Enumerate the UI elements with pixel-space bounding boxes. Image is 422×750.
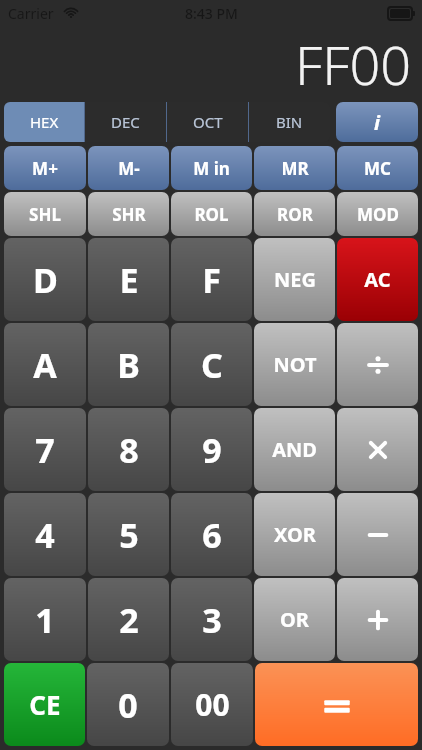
- staticText: DEC: [111, 112, 140, 132]
- staticText: i: [374, 109, 380, 136]
- staticText: SHL: [29, 203, 61, 226]
- button[interactable]: ROR: [254, 192, 335, 236]
- button[interactable]: C: [171, 323, 252, 406]
- button[interactable]: AND: [254, 408, 335, 491]
- staticText: D: [33, 257, 58, 303]
- staticText: MR: [281, 157, 309, 180]
- button[interactable]: SHR: [88, 192, 169, 236]
- staticText: 8: [119, 427, 139, 473]
- button[interactable]: M in: [171, 146, 252, 190]
- button[interactable]: 2: [88, 578, 169, 661]
- staticText: OR: [280, 606, 309, 633]
- button[interactable]: ROL: [171, 192, 252, 236]
- staticText: AND: [272, 436, 317, 463]
- button[interactable]: A: [4, 323, 86, 406]
- staticText: XOR: [274, 521, 316, 548]
- staticText: 00: [195, 684, 230, 725]
- staticText: 2: [119, 597, 139, 643]
- staticText: C: [201, 342, 223, 388]
- staticText: OCT: [193, 112, 223, 132]
- staticText: CE: [29, 687, 61, 722]
- staticText: MOD: [357, 203, 399, 226]
- staticText: M-: [118, 157, 140, 180]
- button[interactable]: B: [88, 323, 169, 406]
- button[interactable]: 0: [87, 663, 169, 746]
- staticText: NOT: [273, 351, 317, 378]
- button[interactable]: Subtract: [337, 493, 418, 576]
- staticText: 6: [202, 512, 222, 558]
- staticText: 7: [35, 427, 55, 473]
- staticText: M+: [32, 157, 58, 180]
- staticText: 1: [35, 597, 55, 643]
- staticText: E: [119, 257, 139, 303]
- button[interactable]: AC: [337, 238, 418, 321]
- button[interactable]: Divide: [337, 323, 418, 406]
- button[interactable]: 00: [171, 663, 253, 746]
- button[interactable]: M+: [4, 146, 86, 190]
- button[interactable]: XOR: [254, 493, 335, 576]
- button[interactable]: MC: [337, 146, 418, 190]
- button[interactable]: 4: [4, 493, 86, 576]
- button[interactable]: SHL: [4, 192, 86, 236]
- button[interactable]: F: [171, 238, 252, 321]
- staticText: ROR: [277, 203, 313, 226]
- staticText: 0: [118, 682, 138, 728]
- staticText: 4: [35, 512, 55, 558]
- staticText: SHR: [112, 203, 146, 226]
- button[interactable]: OR: [254, 578, 335, 661]
- button[interactable]: M-: [88, 146, 169, 190]
- button[interactable]: 3: [171, 578, 252, 661]
- button[interactable]: 7: [4, 408, 86, 491]
- button[interactable]: BIN: [249, 102, 330, 142]
- button[interactable]: MR: [254, 146, 335, 190]
- staticText: 3: [202, 597, 222, 643]
- button[interactable]: 9: [171, 408, 252, 491]
- button[interactable]: 1: [4, 578, 86, 661]
- staticText: A: [33, 342, 57, 388]
- staticText: FF00: [295, 27, 412, 101]
- staticText: AC: [364, 266, 391, 293]
- button[interactable]: Info: [336, 102, 418, 142]
- button[interactable]: CE: [4, 663, 85, 746]
- button[interactable]: D: [4, 238, 86, 321]
- button[interactable]: 5: [88, 493, 169, 576]
- staticText: F: [202, 257, 221, 303]
- button[interactable]: HEX: [4, 102, 84, 142]
- staticText: B: [117, 342, 140, 388]
- button[interactable]: NOT: [254, 323, 335, 406]
- staticText: BIN: [276, 112, 303, 132]
- staticText: 8:43 PM: [185, 4, 238, 23]
- button[interactable]: OCT: [167, 102, 248, 142]
- button[interactable]: 8: [88, 408, 169, 491]
- button[interactable]: MOD: [337, 192, 418, 236]
- staticText: HEX: [30, 112, 59, 132]
- staticText: ROL: [194, 203, 229, 226]
- button[interactable]: E: [88, 238, 169, 321]
- button[interactable]: 6: [171, 493, 252, 576]
- button[interactable]: Equals: [255, 663, 418, 746]
- staticText: M in: [193, 157, 230, 180]
- staticText: MC: [364, 157, 391, 180]
- staticText: 9: [202, 427, 222, 473]
- staticText: NEG: [274, 266, 316, 293]
- button[interactable]: DEC: [85, 102, 166, 142]
- button[interactable]: Multiply: [337, 408, 418, 491]
- button[interactable]: Add: [337, 578, 418, 661]
- button[interactable]: NEG: [254, 238, 335, 321]
- staticText: Carrier: [8, 4, 54, 23]
- staticText: 5: [119, 512, 139, 558]
